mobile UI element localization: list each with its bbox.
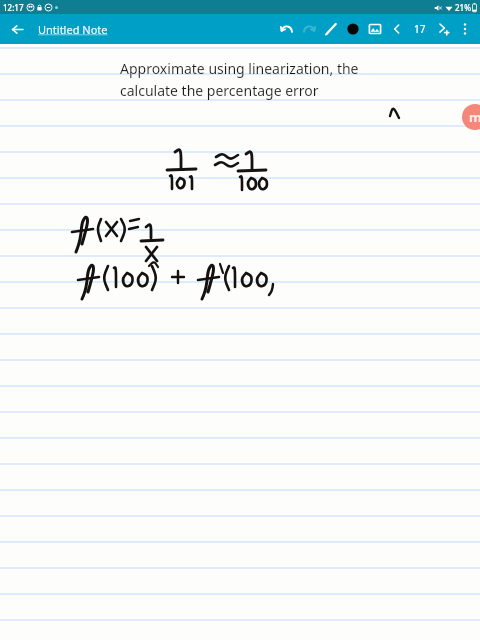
- staticText: calculate the percentage error: [120, 81, 319, 100]
- button[interactable]: Previous page: [386, 16, 408, 42]
- staticText: 21%: [455, 2, 471, 13]
- staticText: Approximate using linearization, the: [120, 59, 359, 78]
- button[interactable]: 17: [408, 16, 432, 42]
- button[interactable]: Pen: [320, 16, 342, 42]
- button[interactable]: Redo: [298, 16, 320, 42]
- button[interactable]: Collaborator: [462, 104, 480, 130]
- button[interactable]: More options: [454, 16, 476, 42]
- button[interactable]: Insert image: [364, 16, 386, 42]
- button[interactable]: Back: [6, 18, 28, 40]
- button[interactable]: Colour: [342, 16, 364, 42]
- button[interactable]: Next page: [432, 16, 454, 42]
- staticText: m: [469, 108, 480, 126]
- button[interactable]: Untitled Note: [38, 22, 108, 37]
- staticText: 12:17: [3, 2, 24, 13]
- button[interactable]: Undo: [276, 16, 298, 42]
- staticText: 17: [414, 22, 426, 36]
